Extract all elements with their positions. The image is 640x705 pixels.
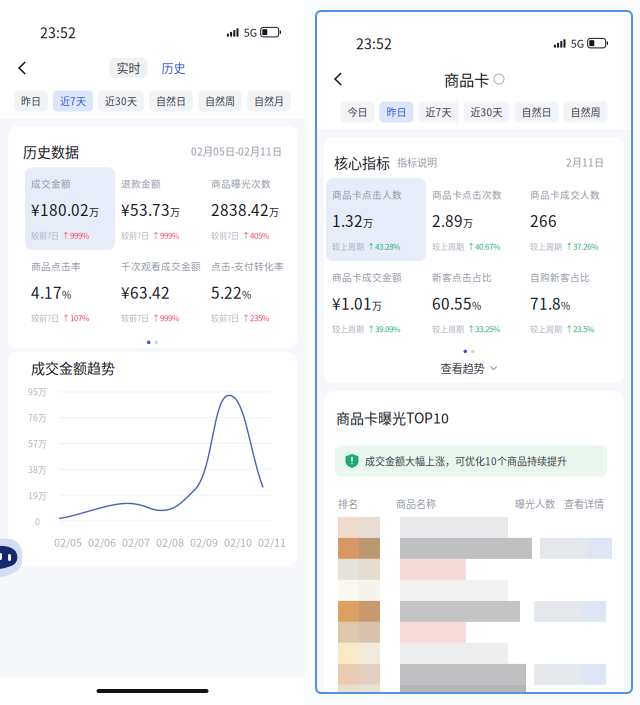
staticText: 商品卡成交人数 xyxy=(530,187,600,201)
staticText: 历史 xyxy=(161,59,185,77)
button[interactable]: 昨日 xyxy=(379,101,413,122)
button[interactable]: 历史 xyxy=(151,58,195,78)
button[interactable]: 实时 xyxy=(109,58,147,78)
staticText: 新客点击占比 xyxy=(432,270,492,284)
button[interactable]: 近7天 xyxy=(53,90,93,111)
staticText: % xyxy=(242,287,251,301)
staticText: 商品名称 xyxy=(396,496,436,511)
staticText: 19万 xyxy=(28,489,47,502)
staticText: 60.55 xyxy=(432,292,472,314)
staticText: 自然周 xyxy=(205,94,235,108)
staticText: 较上周期 xyxy=(332,323,364,335)
staticText: 02/10 xyxy=(224,534,252,550)
staticText: 历史数据 xyxy=(23,141,79,161)
staticText: 0 xyxy=(35,515,40,528)
button[interactable]: 昨日 xyxy=(14,90,48,111)
staticText: ↑43.28% xyxy=(367,240,400,252)
staticText: 2.89 xyxy=(432,209,463,231)
staticText: 商品卡成交金额 xyxy=(332,270,402,284)
staticText: ↑23.5% xyxy=(565,323,594,335)
staticText: 较前7日 xyxy=(211,229,239,241)
staticText: 较上周期 xyxy=(530,323,562,335)
staticText: 万 xyxy=(89,204,99,219)
button[interactable]: 自然周 xyxy=(563,101,607,122)
staticText: 查看趋势 xyxy=(440,360,484,376)
staticText: ↑999% xyxy=(152,229,179,241)
button[interactable]: 自然月 xyxy=(247,90,291,111)
button[interactable]: 查看趋势 xyxy=(319,353,619,383)
staticText: 万 xyxy=(372,298,382,312)
staticText: 57万 xyxy=(28,437,47,450)
staticText: 2月11日 xyxy=(566,155,604,169)
staticText: 5G xyxy=(571,35,584,51)
staticText: ¥1.01 xyxy=(332,292,372,314)
staticText: 较上周期 xyxy=(432,240,464,252)
staticText: 02/09 xyxy=(190,534,218,550)
staticText: 自购新客占比 xyxy=(530,270,590,284)
staticText: 商品卡点击人数 xyxy=(332,187,402,201)
staticText: 自然日 xyxy=(521,105,551,119)
staticText: 查看详情 xyxy=(564,496,604,511)
staticText: ↑107% xyxy=(62,312,89,324)
staticText: % xyxy=(62,287,71,301)
staticText: 近7天 xyxy=(60,94,86,108)
staticText: 较上周期 xyxy=(332,240,364,252)
staticText: ↑235% xyxy=(242,312,269,324)
staticText: 266 xyxy=(530,209,557,231)
button[interactable]: 自然周 xyxy=(198,90,242,111)
staticText: 23:52 xyxy=(40,22,76,42)
staticText: 万 xyxy=(363,215,373,230)
staticText: ↑40.67% xyxy=(467,240,500,252)
staticText: ↑999% xyxy=(62,229,89,241)
staticText: 自然周 xyxy=(570,105,600,119)
staticText: 4.17 xyxy=(31,281,62,303)
staticText: 02/08 xyxy=(156,534,184,550)
staticText: 成交金额 xyxy=(31,176,71,190)
staticText: 较前7日 xyxy=(31,229,59,241)
staticText: 23:52 xyxy=(356,33,392,53)
staticText: ↑33.25% xyxy=(467,323,500,335)
staticText: ↑999% xyxy=(152,312,179,324)
staticText: 商品曝光次数 xyxy=(211,176,271,190)
button[interactable]: 近7天 xyxy=(418,101,458,122)
button[interactable]: 近30天 xyxy=(98,90,144,111)
staticText: 较前7日 xyxy=(121,229,149,241)
staticText: 退款金额 xyxy=(121,176,161,190)
staticText: 近30天 xyxy=(105,94,137,108)
button[interactable]: 自然日 xyxy=(514,101,558,122)
staticText: 商品卡 xyxy=(444,68,489,90)
staticText: 核心指标 xyxy=(334,152,390,172)
button[interactable]: 近30天 xyxy=(463,101,509,122)
staticText: 成交金额大幅上涨，可优化10个商品持续提升 xyxy=(365,454,567,468)
staticText: 38万 xyxy=(28,463,47,476)
staticText: ¥180.02 xyxy=(31,198,89,220)
staticText: 71.8 xyxy=(530,292,561,314)
staticText: 较前7日 xyxy=(211,312,239,324)
staticText: 02/11 xyxy=(258,534,286,550)
staticText: 较前7日 xyxy=(31,312,59,324)
staticText: 1.32 xyxy=(332,209,363,231)
staticText: 万 xyxy=(463,215,473,230)
button[interactable]: Back xyxy=(316,65,364,93)
button[interactable]: Back xyxy=(0,53,48,83)
staticText: 万 xyxy=(170,204,180,219)
staticText: ↑39.09% xyxy=(367,323,400,335)
staticText: 千次观看成交金额 xyxy=(121,259,201,273)
staticText: 76万 xyxy=(28,411,47,424)
staticText: 02月05日-02月11日 xyxy=(191,144,282,158)
button[interactable]: 今日 xyxy=(340,101,374,122)
staticText: 02/05 xyxy=(54,534,82,550)
staticText: 指标说明 xyxy=(397,155,437,169)
staticText: 万 xyxy=(269,204,279,219)
staticText: 排名 xyxy=(338,496,358,511)
staticText: 商品点击率 xyxy=(31,259,81,273)
staticText: ↑405% xyxy=(242,229,269,241)
staticText: ↑37.26% xyxy=(565,240,598,252)
staticText: % xyxy=(561,298,570,312)
staticText: 近30天 xyxy=(470,105,502,119)
staticText: 5.22 xyxy=(211,281,242,303)
button[interactable]: 自然日 xyxy=(149,90,193,111)
staticText: 自然日 xyxy=(156,94,186,108)
staticText: 点击-支付转化率 xyxy=(211,259,284,273)
staticText: ¥53.73 xyxy=(121,198,170,220)
